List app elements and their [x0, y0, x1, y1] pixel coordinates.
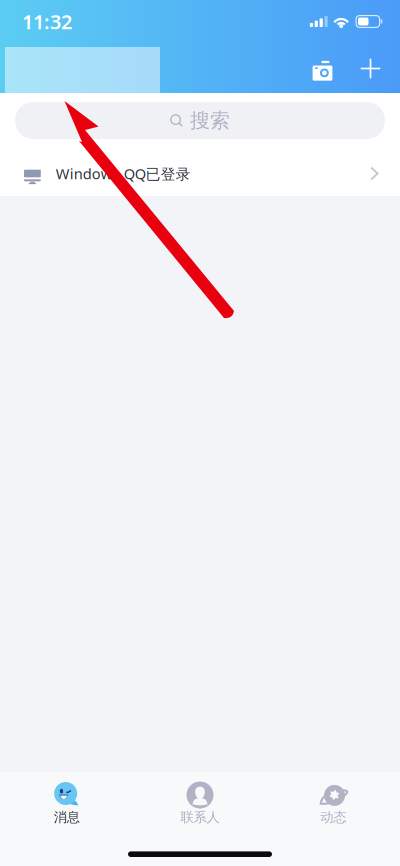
- staticText: Windows QQ已登录: [56, 164, 191, 183]
- button[interactable]: 联系人: [133, 781, 267, 833]
- button[interactable]: Add: [348, 45, 392, 91]
- button[interactable]: 消息: [0, 781, 133, 833]
- staticText: 11:32: [22, 8, 72, 35]
- staticText: 消息: [54, 809, 80, 825]
- button[interactable]: Windows QQ已登录: [0, 151, 400, 196]
- staticText: 动态: [320, 809, 346, 825]
- button[interactable]: Camera: [296, 45, 348, 91]
- button[interactable]: 动态: [267, 781, 400, 833]
- staticText: 联系人: [180, 809, 219, 825]
- button[interactable]: 搜索: [15, 102, 385, 139]
- staticText: 搜索: [190, 108, 230, 133]
